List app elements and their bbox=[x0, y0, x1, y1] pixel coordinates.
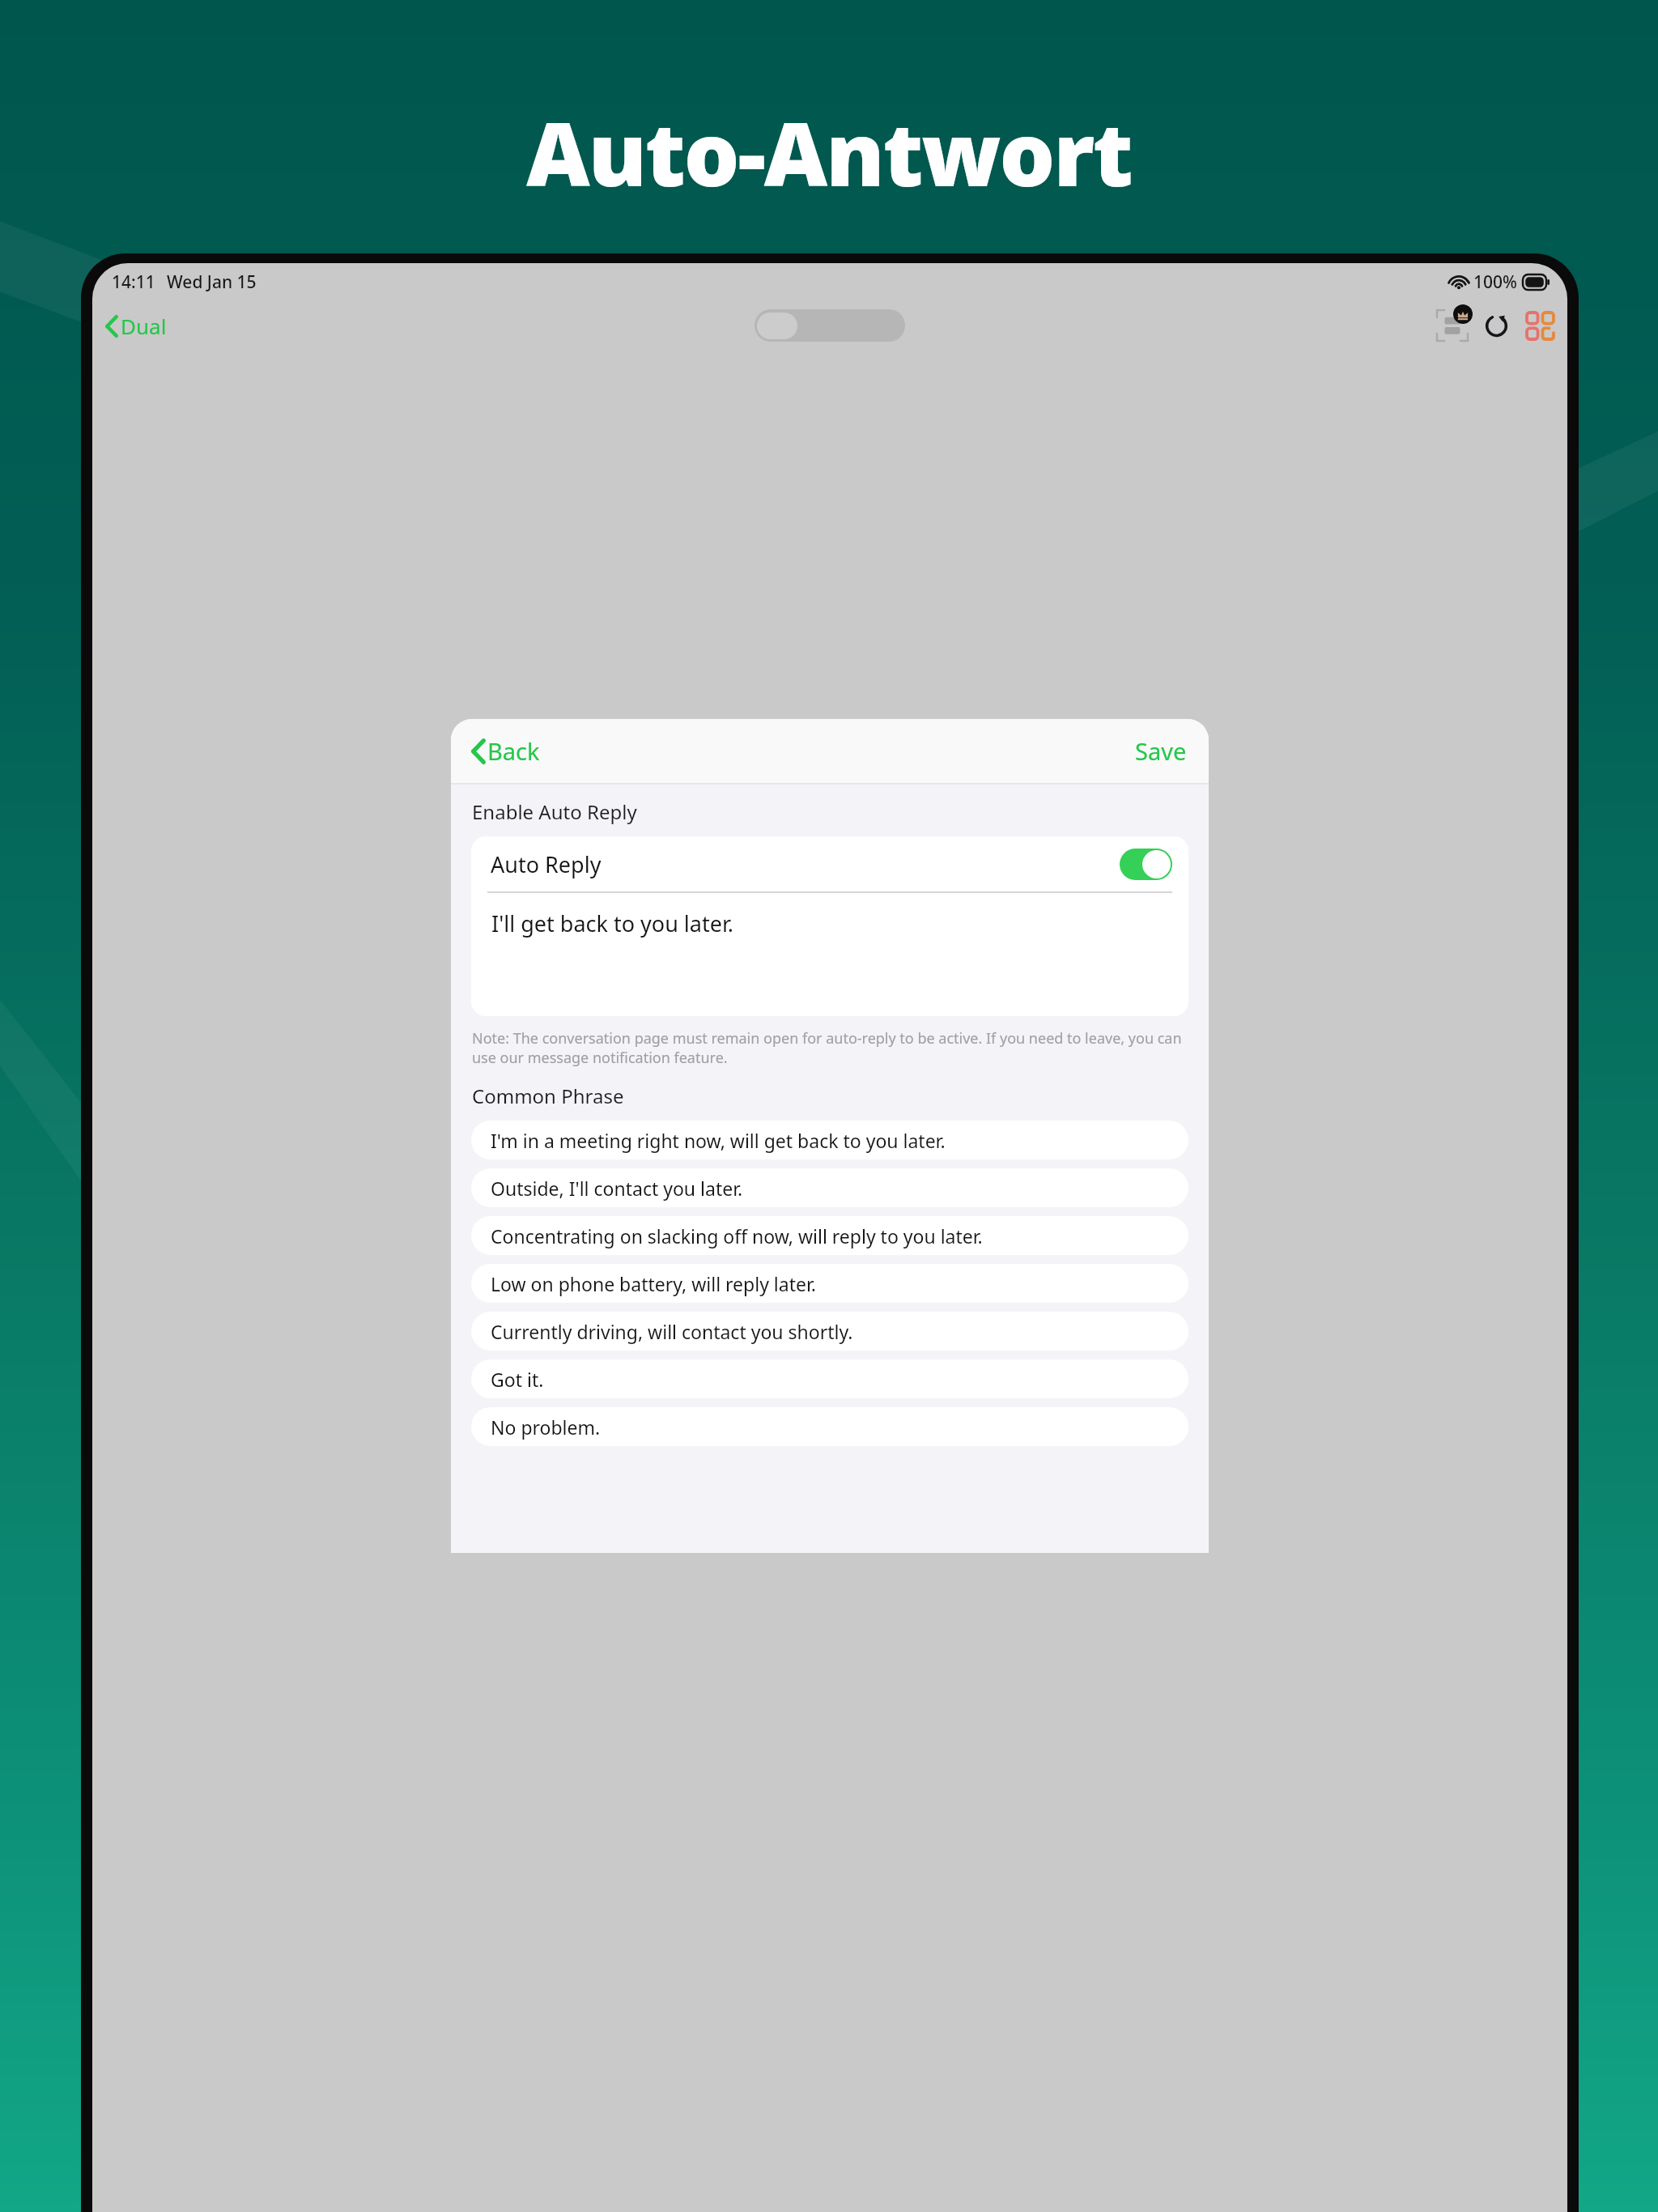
button[interactable]: Low on phone battery, will reply later. bbox=[471, 1264, 1188, 1303]
staticText: Auto Reply bbox=[491, 849, 602, 879]
staticText: 14:11 bbox=[112, 270, 155, 294]
staticText: Note: The conversation page must remain … bbox=[472, 1028, 1191, 1067]
button[interactable]: Back bbox=[467, 730, 544, 772]
button[interactable]: Concentrating on slacking off now, will … bbox=[471, 1216, 1188, 1255]
button[interactable]: Auto Reply bbox=[471, 836, 1188, 891]
staticText: Enable Auto Reply bbox=[472, 798, 637, 825]
staticText: Outside, I'll contact you later. bbox=[491, 1176, 743, 1201]
button[interactable]: Dual app window bbox=[755, 309, 905, 342]
button[interactable]: I'm in a meeting right now, will get bac… bbox=[471, 1121, 1188, 1159]
button[interactable]: Split screen premium bbox=[1437, 310, 1468, 341]
staticText: Save bbox=[1135, 735, 1187, 767]
button[interactable]: Scan code bbox=[1527, 313, 1554, 339]
staticText: Dual bbox=[121, 312, 167, 340]
staticText: Low on phone battery, will reply later. bbox=[491, 1271, 816, 1296]
button[interactable]: No problem. bbox=[471, 1407, 1188, 1446]
staticText: Common Phrase bbox=[472, 1083, 624, 1109]
staticText: Concentrating on slacking off now, will … bbox=[491, 1223, 983, 1249]
staticText: I'm in a meeting right now, will get bac… bbox=[491, 1128, 946, 1153]
button[interactable]: Refresh bbox=[1483, 313, 1510, 339]
button[interactable]: Got it. bbox=[471, 1359, 1188, 1398]
staticText: Wed Jan 15 bbox=[167, 270, 257, 294]
button[interactable]: Outside, I'll contact you later. bbox=[471, 1168, 1188, 1207]
button[interactable]: Dual bbox=[100, 307, 172, 345]
staticText: Auto-Antwort bbox=[0, 93, 1658, 212]
button[interactable]: Save bbox=[1131, 730, 1191, 772]
staticText: 100% bbox=[1473, 270, 1517, 294]
staticText: Got it. bbox=[491, 1367, 544, 1392]
button[interactable]: Currently driving, will contact you shor… bbox=[471, 1312, 1188, 1351]
staticText: I'll get back to you later. bbox=[491, 908, 733, 938]
staticText: No problem. bbox=[491, 1414, 601, 1440]
staticText: Currently driving, will contact you shor… bbox=[491, 1319, 853, 1344]
staticText: Back bbox=[487, 735, 540, 767]
